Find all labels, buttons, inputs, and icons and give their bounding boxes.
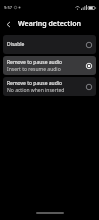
staticText: Wearing detection (0, 19, 99, 29)
staticText: 9:57 (4, 5, 12, 10)
staticText: No action when inserted (7, 87, 65, 94)
button[interactable]: Back (0, 16, 16, 32)
staticText: Remove to pause audio (7, 80, 63, 87)
staticText: Disable (7, 41, 25, 48)
staticText: Remove to pause audio (7, 59, 63, 66)
button[interactable]: Remove to pause audio (3, 56, 96, 75)
staticText: Insert to resume audio (7, 66, 61, 73)
button[interactable]: Disable (3, 35, 96, 54)
button[interactable]: Remove to pause audio (3, 77, 96, 96)
